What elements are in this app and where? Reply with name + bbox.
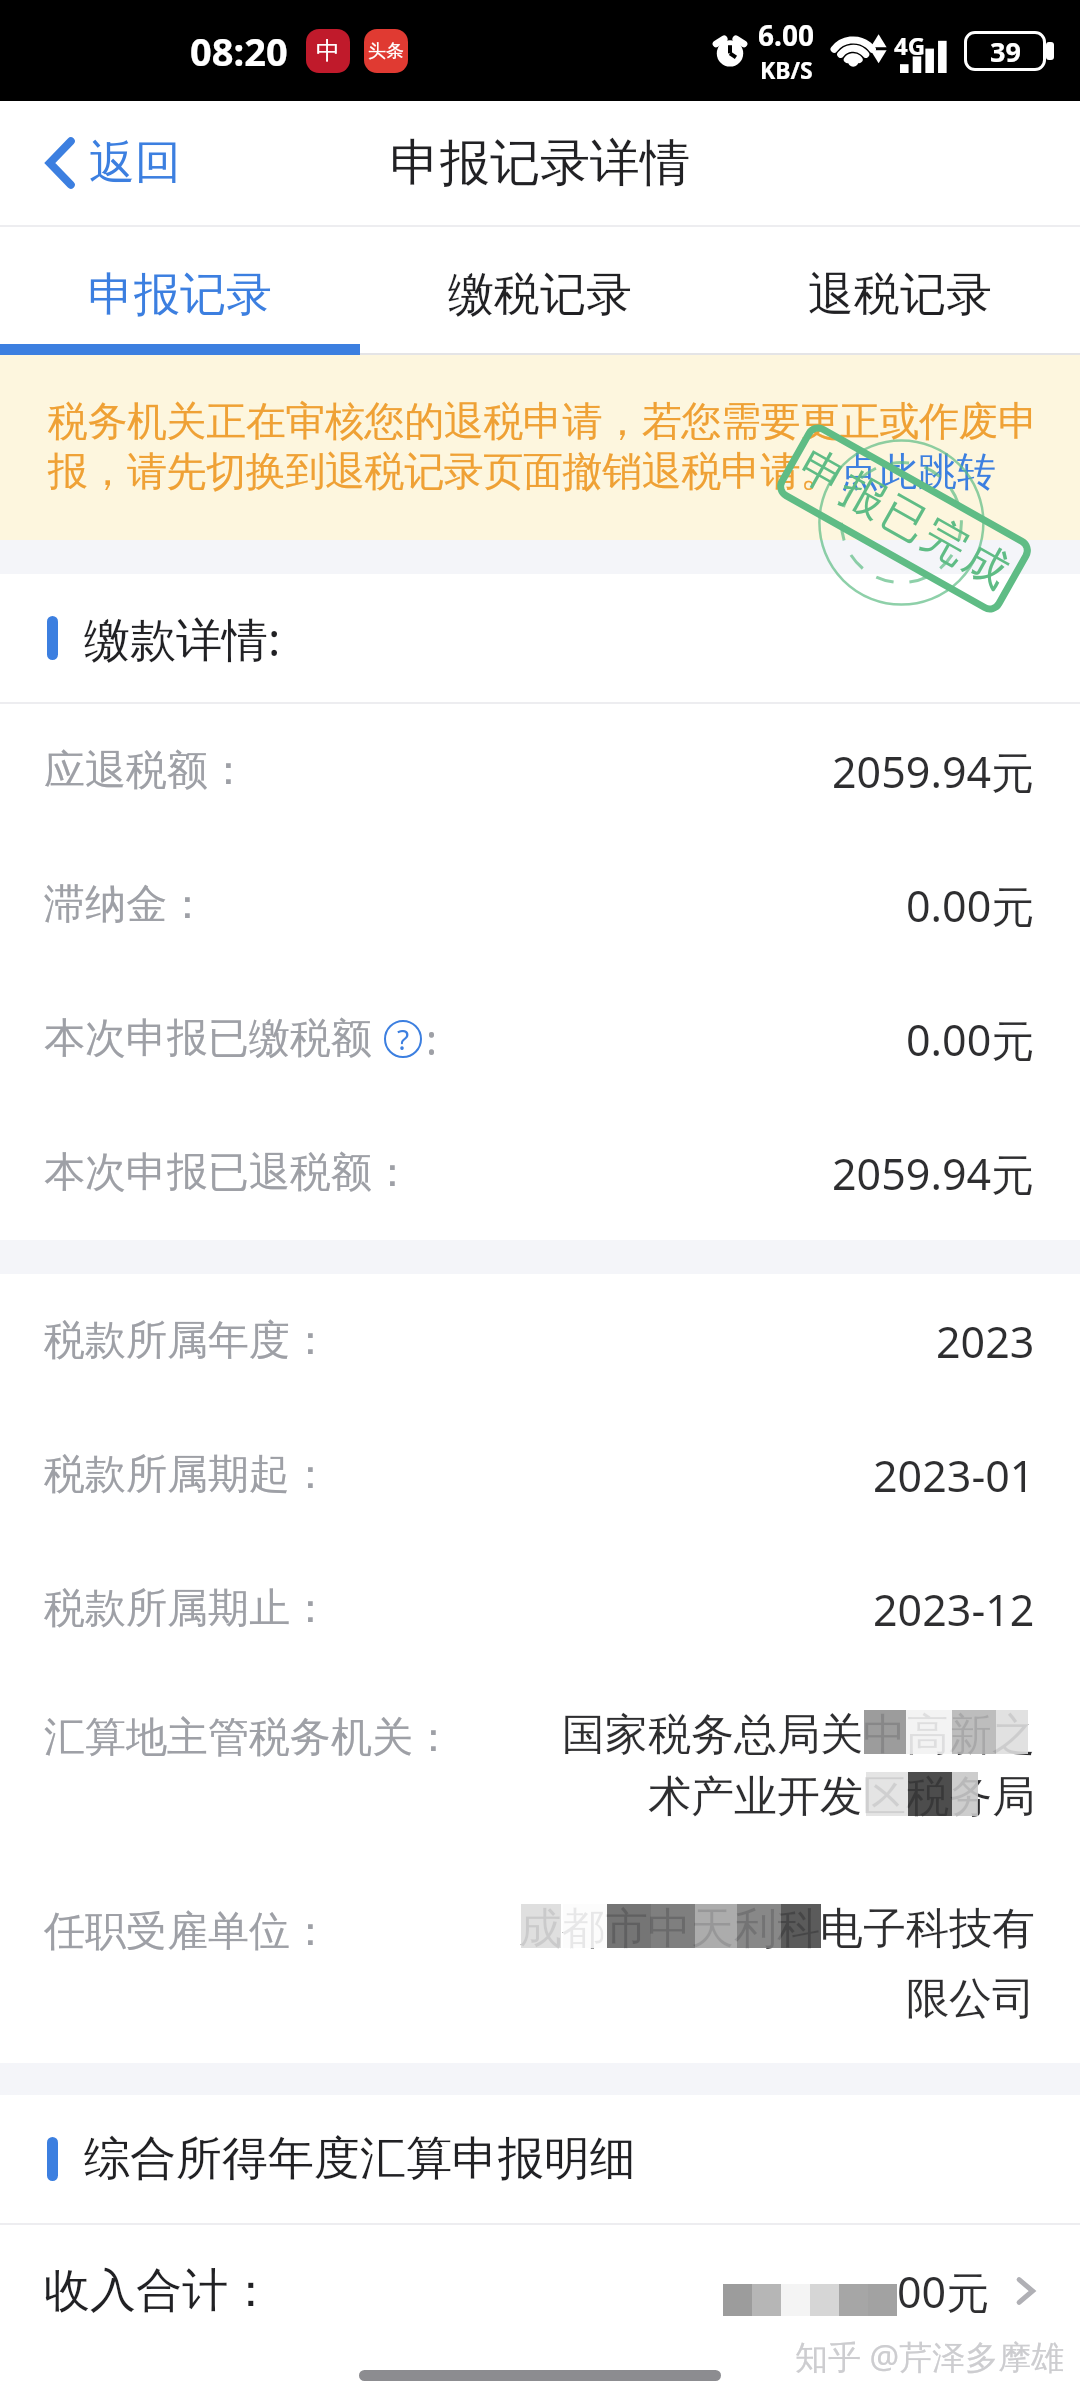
staticText: 申报已完成 (789, 437, 1020, 600)
button[interactable]: 退税记录 (720, 227, 1080, 355)
staticText: 任职受雇单位： (44, 1906, 331, 1958)
staticText: 知乎 @芹泽多摩雄 (795, 2334, 1065, 2379)
staticText: 应退税额： (44, 745, 249, 797)
staticText: 2059.94元 (832, 1144, 1035, 1203)
staticText: 4G (894, 29, 926, 62)
staticText: 税务机关正在审核您的退税申请，若您需要更正或作废申 (48, 396, 1038, 446)
staticText: 08:20 (190, 25, 288, 77)
staticText: 2023 (936, 1312, 1035, 1371)
staticText: 返回 (89, 134, 181, 192)
staticText: 申报记录详情 (390, 132, 690, 195)
button[interactable]: 缴税记录 (360, 227, 720, 355)
staticText: 收入合计： (44, 2262, 274, 2320)
staticText: 退税记录 (808, 266, 992, 324)
staticText: : (426, 1011, 437, 1067)
staticText: 税款所属期起： (44, 1449, 331, 1501)
staticText: KB/S (760, 54, 813, 85)
staticText: 缴款详情: (84, 607, 281, 670)
button[interactable]: 说明 (384, 1020, 422, 1058)
staticText: 汇算地主管税务机关： (44, 1712, 454, 1764)
staticText: 报，请先切换到退税记录页面撤销退税申请。 (48, 446, 840, 496)
staticText: 00元 (897, 2262, 990, 2321)
staticText: 0.00元 (906, 876, 1035, 935)
staticText: 本次申报已缴税额 (44, 1013, 372, 1065)
staticText: 头条 (368, 40, 404, 63)
staticText: 6.00 (758, 16, 814, 54)
button[interactable]: 申报记录 (0, 227, 360, 355)
button[interactable]: 点此跳转 (840, 447, 996, 496)
staticText: 成都市中天利科电子科技有 (519, 1902, 1035, 1956)
staticText: 申报记录 (88, 266, 272, 324)
staticText: 2023-12 (873, 1580, 1035, 1639)
staticText: 缴税记录 (448, 266, 632, 324)
staticText: 2023-01 (873, 1446, 1035, 1505)
button[interactable]: 收入合计： (0, 2225, 1080, 2357)
staticText: 本次申报已退税额： (44, 1147, 413, 1199)
staticText: 限公司 (906, 1972, 1035, 2026)
staticText: ? (397, 1020, 410, 1058)
staticText: 中 (316, 36, 340, 66)
staticText: 综合所得年度汇算申报明细 (84, 2130, 636, 2188)
staticText: 0.00元 (906, 1010, 1035, 1069)
staticText: 2059.94元 (832, 742, 1035, 801)
staticText: 国家税务总局关中高新之 (562, 1708, 1035, 1762)
staticText: 术产业开发区税务局 (648, 1770, 1035, 1824)
staticText: 滞纳金： (44, 879, 208, 931)
staticText: 税款所属年度： (44, 1315, 331, 1367)
staticText: 39 (990, 33, 1021, 70)
staticText: 税款所属期止： (44, 1583, 331, 1635)
button[interactable]: 返回 (0, 101, 230, 225)
